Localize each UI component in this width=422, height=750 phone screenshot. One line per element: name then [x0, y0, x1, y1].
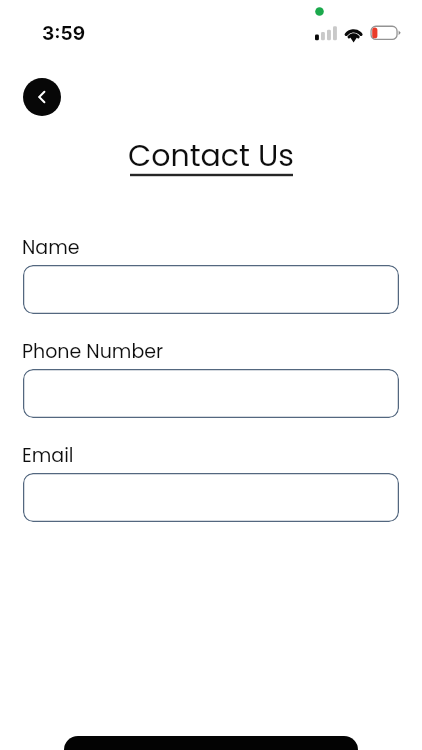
button[interactable]	[23, 265, 399, 314]
staticText: Phone Number	[22, 338, 164, 365]
staticText: Contact Us	[0, 135, 422, 177]
button[interactable]	[23, 473, 399, 522]
staticText: 3:59	[42, 22, 86, 45]
button[interactable]: Back	[23, 78, 61, 116]
staticText: Email	[22, 442, 74, 469]
staticText: Name	[22, 234, 80, 261]
button[interactable]	[23, 369, 399, 418]
button[interactable]: Submit	[64, 736, 358, 750]
